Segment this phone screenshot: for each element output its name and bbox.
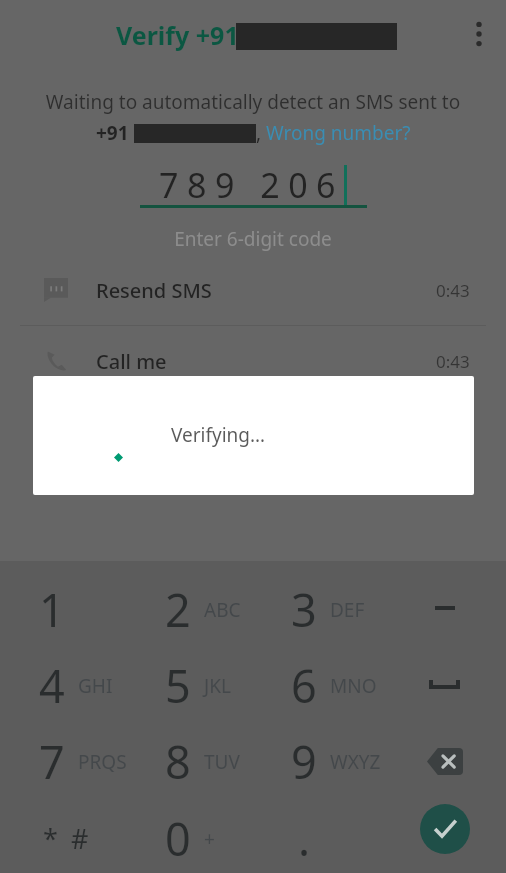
- button[interactable]: 8: [126, 723, 252, 800]
- button[interactable]: 1: [0, 571, 126, 647]
- staticText: 0: [165, 808, 191, 869]
- other: Space: [429, 680, 460, 689]
- staticText: Waiting to automatically detect an SMS s…: [0, 89, 506, 115]
- staticText: Call me: [96, 348, 167, 375]
- button[interactable]: 3: [252, 571, 379, 647]
- staticText: ,: [256, 120, 262, 146]
- staticText: 7: [39, 731, 65, 792]
- button[interactable]: Wrong number?: [266, 120, 411, 146]
- staticText: Resend SMS: [96, 277, 212, 304]
- staticText: DEF: [330, 597, 365, 623]
- staticText: * #: [43, 820, 92, 857]
- staticText: Wrong number?: [266, 120, 411, 146]
- staticText: 2: [165, 579, 191, 640]
- staticText: GHI: [78, 673, 113, 699]
- staticText: Verifying…: [171, 422, 266, 448]
- staticText: 0:43: [436, 350, 470, 373]
- button[interactable]: 4: [0, 647, 126, 723]
- staticText: 5: [165, 655, 191, 716]
- button[interactable]: More options: [455, 10, 503, 58]
- staticText: ABC: [204, 597, 241, 623]
- button[interactable]: 5: [126, 647, 252, 723]
- staticText: MNO: [330, 673, 377, 699]
- staticText: 3: [291, 579, 317, 640]
- button[interactable]: Space: [379, 647, 506, 723]
- button[interactable]: * #: [0, 800, 126, 873]
- button[interactable]: Dash: [379, 571, 506, 647]
- button[interactable]: 2: [126, 571, 252, 647]
- staticText: 0:43: [436, 279, 470, 302]
- staticText: Verify +91: [116, 18, 239, 52]
- staticText: 9: [291, 731, 317, 792]
- other: Backspace: [427, 748, 463, 775]
- staticText: 789 206: [159, 162, 345, 208]
- staticText: +91: [96, 120, 129, 146]
- staticText: JKL: [204, 673, 231, 699]
- staticText: 1: [39, 579, 65, 640]
- button[interactable]: 9: [252, 723, 379, 800]
- staticText: 8: [165, 731, 191, 792]
- button[interactable]: Resend SMS: [0, 255, 506, 325]
- staticText: +: [204, 826, 215, 852]
- staticText: PRQS: [78, 749, 127, 775]
- staticText: .: [298, 808, 311, 869]
- staticText: 4: [39, 655, 65, 716]
- staticText: 6: [291, 655, 317, 716]
- button[interactable]: 6: [252, 647, 379, 723]
- button[interactable]: 7: [0, 723, 126, 800]
- button[interactable]: Backspace: [379, 723, 506, 800]
- staticText: WXYZ: [330, 749, 381, 775]
- button[interactable]: 0: [126, 800, 252, 873]
- button[interactable]: Call me: [0, 326, 506, 396]
- button[interactable]: Enter: [379, 800, 506, 873]
- staticText: TUV: [204, 749, 240, 775]
- staticText: Enter 6-digit code: [0, 226, 506, 252]
- button[interactable]: Enter: [420, 804, 470, 854]
